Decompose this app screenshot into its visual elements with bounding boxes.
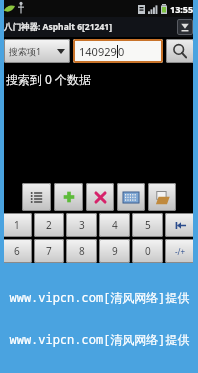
button[interactable]: Toggle sign <box>165 239 196 263</box>
button[interactable]: Open file <box>148 183 176 211</box>
button[interactable]: List <box>22 183 51 211</box>
button[interactable]: 1 <box>2 213 32 237</box>
staticText: -/+ <box>175 246 186 257</box>
button[interactable]: 6 <box>2 239 32 263</box>
button[interactable]: 140929 <box>79 39 163 63</box>
button[interactable]: 搜索项1 <box>4 39 70 63</box>
button[interactable]: Delete <box>86 183 114 211</box>
button[interactable]: Backspace <box>165 213 196 237</box>
button[interactable]: Add <box>54 183 83 211</box>
button[interactable]: 3 <box>66 213 97 237</box>
button[interactable]: 0 <box>132 239 163 263</box>
staticText: 搜索项1 <box>9 45 42 57</box>
staticText: 5 <box>145 218 151 232</box>
staticText: 140929 <box>79 44 117 59</box>
staticText: 4 <box>112 218 118 232</box>
staticText: 0 <box>118 44 125 59</box>
button[interactable]: 9 <box>99 239 130 263</box>
staticText: 1 <box>14 218 20 232</box>
button[interactable]: Download <box>177 19 193 35</box>
staticText: 9 <box>112 244 118 258</box>
button[interactable]: Search <box>166 39 194 63</box>
staticText: 0 <box>145 244 151 258</box>
button[interactable]: 7 <box>34 239 64 263</box>
staticText: 13:55 <box>170 3 194 15</box>
staticText: 2 <box>46 218 52 232</box>
staticText: 6 <box>14 244 20 258</box>
button[interactable]: 5 <box>132 213 163 237</box>
staticText: 搜索到 0 个数据 <box>6 71 92 87</box>
staticText: 八门神器: Asphalt 6[21241] <box>4 21 112 33</box>
staticText: www.vipcn.com[清风网络]提供 <box>9 289 190 305</box>
button[interactable]: 8 <box>66 239 97 263</box>
button[interactable]: 2 <box>34 213 64 237</box>
staticText: www.vipcn.com[清风网络]提供 <box>9 331 190 347</box>
staticText: 8 <box>79 244 85 258</box>
button[interactable]: 4 <box>99 213 130 237</box>
button[interactable]: Keyboard <box>117 183 145 211</box>
staticText: 7 <box>46 244 52 258</box>
staticText: 3 <box>79 218 85 232</box>
